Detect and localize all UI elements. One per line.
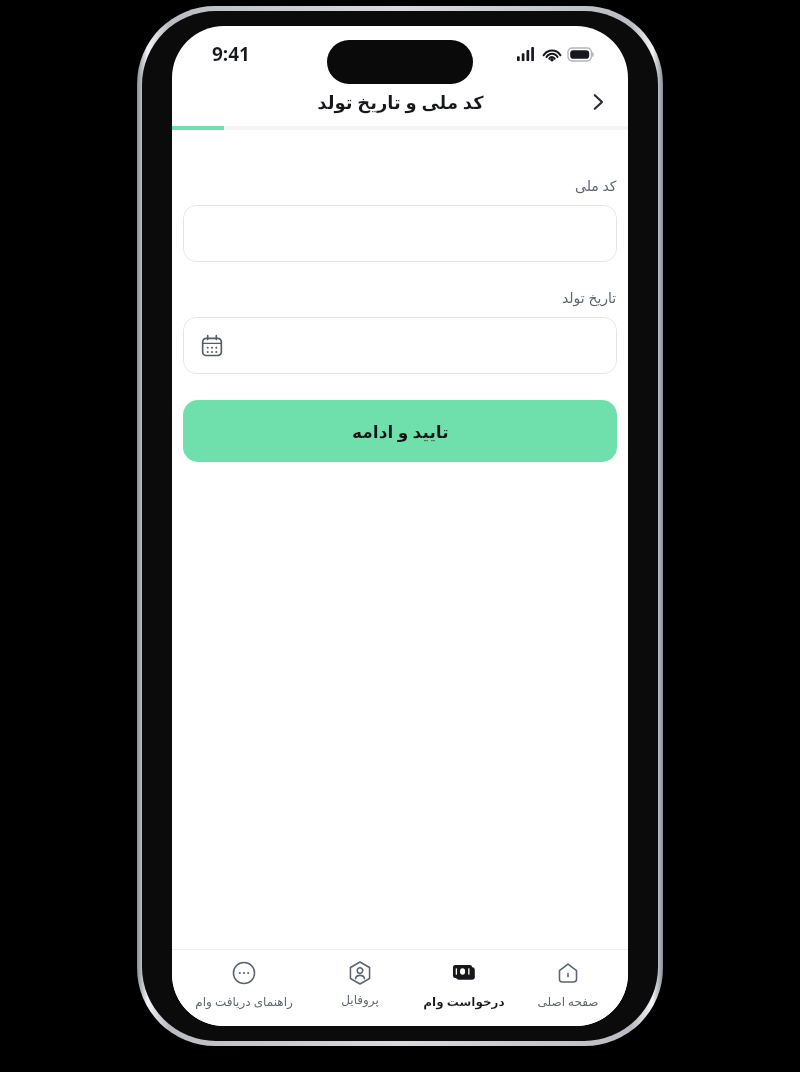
- staticText: پروفایل: [341, 993, 379, 1007]
- staticText: کد ملی: [575, 176, 617, 195]
- other: Pick date: [197, 331, 227, 361]
- button[interactable]: پروفایل: [308, 950, 412, 1026]
- button[interactable]: Pick date: [183, 317, 617, 374]
- button[interactable]: Back: [576, 80, 620, 124]
- button[interactable]: درخواست وام: [412, 950, 516, 1026]
- button[interactable]: تایید و ادامه: [183, 400, 617, 462]
- staticText: راهنمای دریافت وام: [195, 993, 293, 1009]
- staticText: صفحه اصلی: [537, 993, 599, 1009]
- staticText: کد ملی و تاریخ تولد: [317, 90, 484, 115]
- button[interactable]: راهنمای دریافت وام: [180, 950, 308, 1026]
- staticText: تاریخ تولد: [562, 288, 617, 307]
- staticText: 9:41: [212, 41, 250, 67]
- staticText: تایید و ادامه: [352, 420, 449, 443]
- button[interactable]: صفحه اصلی: [516, 950, 620, 1026]
- button[interactable]: [183, 205, 617, 262]
- staticText: درخواست وام: [423, 993, 505, 1009]
